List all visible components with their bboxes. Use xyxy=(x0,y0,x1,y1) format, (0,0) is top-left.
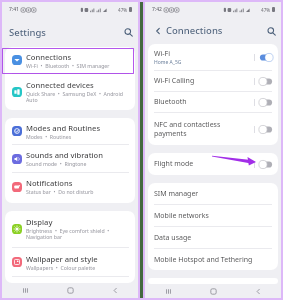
button[interactable]: Recents xyxy=(145,284,191,298)
staticText: Quick Share • Samsung DeX • Android Auto xyxy=(26,90,129,104)
button[interactable]: Mobile Hotspot and Tethering xyxy=(148,249,278,270)
staticText: Wi-Fi • Bluetooth • SIM manager xyxy=(26,62,110,69)
staticText: Home A_5G xyxy=(154,59,182,66)
button[interactable]: Recents xyxy=(2,283,48,298)
button[interactable]: Search xyxy=(264,24,278,38)
staticText: Modes and Routines xyxy=(26,123,101,133)
staticText: Mobile Hotspot and Tethering xyxy=(154,255,253,265)
staticText: Mobile networks xyxy=(154,211,209,221)
button[interactable]: Home xyxy=(191,284,236,298)
staticText: Connections xyxy=(166,24,223,37)
button[interactable]: NFC and contactless payments xyxy=(148,113,278,145)
button[interactable]: Back xyxy=(236,284,281,298)
button[interactable]: Modes and Routines xyxy=(5,118,135,144)
button[interactable]: SIM manager xyxy=(148,183,278,204)
button[interactable]: Display xyxy=(5,211,135,247)
button[interactable]: Switch off xyxy=(259,98,273,107)
button[interactable]: Connected devices xyxy=(5,74,135,110)
staticText: 47% xyxy=(118,7,128,13)
staticText: Connections xyxy=(26,52,72,62)
button[interactable]: Bluetooth xyxy=(148,92,278,112)
staticText: Wallpaper and style xyxy=(26,254,98,264)
staticText: Sounds and vibration xyxy=(26,150,104,160)
staticText: SIM manager xyxy=(154,189,199,199)
button[interactable]: Notifications xyxy=(5,173,135,200)
staticText: 47% xyxy=(261,7,271,13)
staticText: Connected devices xyxy=(26,80,94,90)
button[interactable]: Wi-Fi xyxy=(148,44,278,70)
button[interactable]: Switch off xyxy=(259,160,273,169)
staticText: Display xyxy=(26,217,53,227)
button[interactable]: Back xyxy=(93,283,138,298)
button[interactable]: Mobile networks xyxy=(148,205,278,226)
button[interactable]: Search xyxy=(121,25,135,39)
staticText: Bluetooth xyxy=(154,97,187,107)
staticText: Wi-Fi Calling xyxy=(154,76,195,86)
button[interactable]: Wallpaper and style xyxy=(5,248,135,276)
staticText: Brightness • Eye comfort shield • Naviga… xyxy=(26,227,129,241)
staticText: 7:42 xyxy=(152,6,162,13)
button[interactable]: Home xyxy=(48,283,93,298)
staticText: NFC and contactless payments xyxy=(154,120,221,138)
staticText: Sound mode • Ringtone xyxy=(26,160,87,167)
button[interactable]: Back xyxy=(152,25,163,36)
button[interactable]: Flight mode xyxy=(148,153,278,175)
staticText: Wi-Fi xyxy=(154,49,171,59)
staticText: Flight mode xyxy=(154,159,194,169)
button[interactable]: Sounds and vibration xyxy=(5,145,135,172)
button[interactable]: Switch off xyxy=(259,77,273,86)
staticText: Status bar • Do not disturb xyxy=(26,188,94,195)
staticText: Data usage xyxy=(154,233,192,243)
button[interactable]: Switch on xyxy=(259,53,273,62)
button[interactable]: Switch off xyxy=(259,125,273,134)
staticText: 7:41 xyxy=(9,6,19,13)
button[interactable]: Wi-Fi Calling xyxy=(148,71,278,91)
button[interactable]: Connections xyxy=(5,47,135,73)
button[interactable]: Data usage xyxy=(148,227,278,248)
staticText: Modes • Routines xyxy=(26,133,72,140)
staticText: Wallpapers • Colour palette xyxy=(26,264,96,271)
staticText: Settings xyxy=(9,26,46,39)
staticText: Notifications xyxy=(26,178,73,188)
